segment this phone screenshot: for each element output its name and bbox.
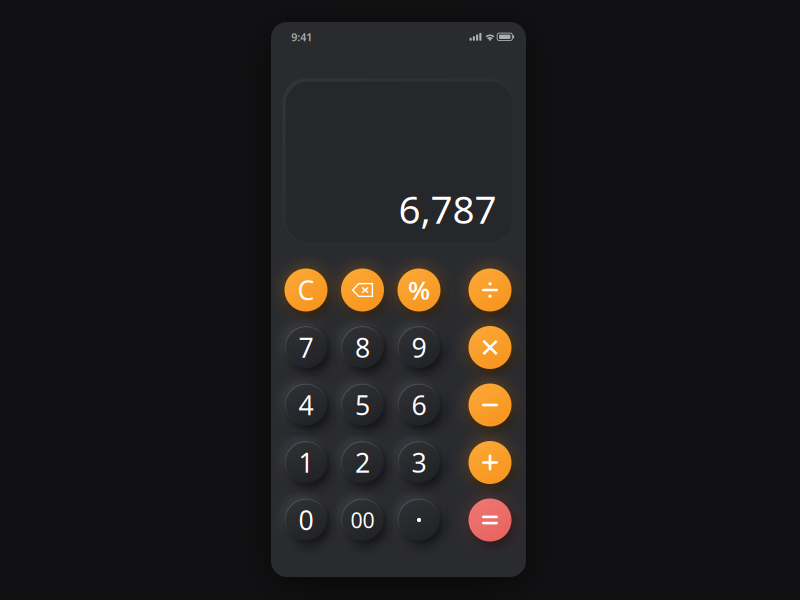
button[interactable]: Delete — [341, 268, 384, 311]
staticText: 8 — [355, 330, 370, 365]
button[interactable]: 7 — [284, 326, 327, 369]
button[interactable]: Percent — [397, 268, 440, 311]
button[interactable]: 9 — [397, 326, 440, 369]
button[interactable]: 3 — [397, 441, 440, 484]
button[interactable]: C — [284, 268, 327, 311]
staticText: 1 — [298, 445, 313, 480]
button[interactable]: 2 — [341, 441, 384, 484]
staticText: 0 — [298, 502, 313, 538]
button[interactable]: Multiply — [468, 326, 511, 369]
button[interactable]: 0 — [284, 498, 327, 541]
staticText: 9:41 — [291, 30, 312, 44]
button[interactable]: Equals — [468, 498, 511, 541]
button[interactable]: Plus — [468, 441, 511, 484]
button[interactable]: 00 — [341, 498, 384, 541]
staticText: 2 — [355, 445, 370, 480]
staticText: % — [408, 273, 430, 307]
staticText: 5 — [355, 387, 370, 423]
staticText: 6 — [411, 387, 426, 423]
staticText: 4 — [298, 387, 313, 423]
staticText: 7 — [298, 330, 313, 365]
staticText: 9 — [411, 330, 426, 365]
button[interactable]: 4 — [284, 383, 327, 426]
button[interactable]: Decimal point — [397, 498, 440, 541]
button[interactable]: Divide — [468, 268, 511, 311]
staticText: 00 — [350, 506, 374, 534]
staticText: C — [297, 272, 314, 308]
button[interactable]: 1 — [284, 441, 327, 484]
button[interactable]: 6 — [397, 383, 440, 426]
button[interactable]: 5 — [341, 383, 384, 426]
button[interactable]: 8 — [341, 326, 384, 369]
staticText: 6,787 — [398, 183, 496, 234]
staticText: 3 — [411, 445, 426, 480]
button[interactable]: Minus — [468, 383, 511, 426]
